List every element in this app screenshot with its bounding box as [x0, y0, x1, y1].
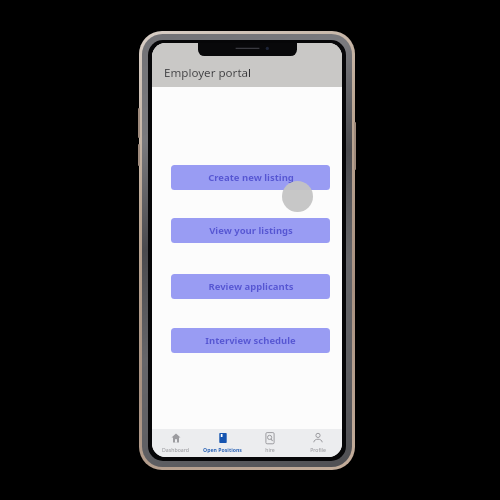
button[interactable]: Interview schedule	[171, 328, 330, 353]
staticText: Open Positions	[203, 446, 242, 453]
other: Dashboard	[171, 433, 181, 443]
other: Profile	[313, 433, 323, 443]
button[interactable]: Dashboard	[152, 429, 199, 457]
staticText: Employer portal	[164, 65, 252, 81]
button[interactable]: Hire	[246, 429, 294, 457]
staticText: Profile	[310, 446, 326, 453]
button[interactable]: Open Positions	[199, 429, 246, 457]
staticText: hire	[265, 446, 275, 453]
staticText: Interview schedule	[205, 334, 296, 347]
button[interactable]: View your listings	[171, 218, 330, 243]
staticText: Create new listing	[208, 171, 294, 184]
other: Hire	[265, 433, 275, 443]
button[interactable]: Review applicants	[171, 274, 330, 299]
other: Open Positions	[218, 433, 228, 443]
staticText: View your listings	[209, 224, 293, 237]
button[interactable]: Profile	[294, 429, 342, 457]
staticText: Review applicants	[208, 280, 294, 293]
staticText: Dashboard	[162, 446, 189, 453]
button[interactable]: Create new listing	[171, 165, 330, 190]
